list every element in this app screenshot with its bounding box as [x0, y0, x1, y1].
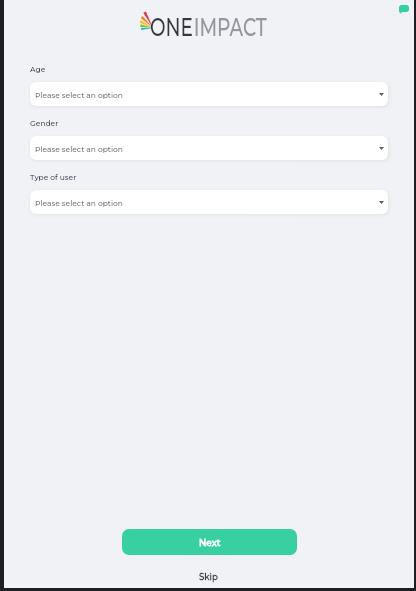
staticText: Skip [199, 572, 218, 582]
staticText: IMPACT [194, 12, 267, 42]
button[interactable]: Chat support [399, 5, 409, 14]
staticText: Type of user [30, 173, 77, 182]
staticText: Please select an option [35, 199, 123, 208]
staticText: ONE [150, 12, 194, 42]
button[interactable]: Please select an option [30, 136, 388, 160]
button[interactable]: Please select an option [30, 190, 388, 214]
staticText: Age [30, 65, 46, 74]
staticText: Gender [30, 119, 59, 128]
staticText: Next [199, 537, 221, 548]
staticText: Please select an option [35, 91, 123, 100]
button[interactable]: Skip [190, 569, 226, 585]
button[interactable]: Please select an option [30, 82, 388, 106]
button[interactable]: Next [122, 529, 297, 555]
staticText: Please select an option [35, 145, 123, 154]
